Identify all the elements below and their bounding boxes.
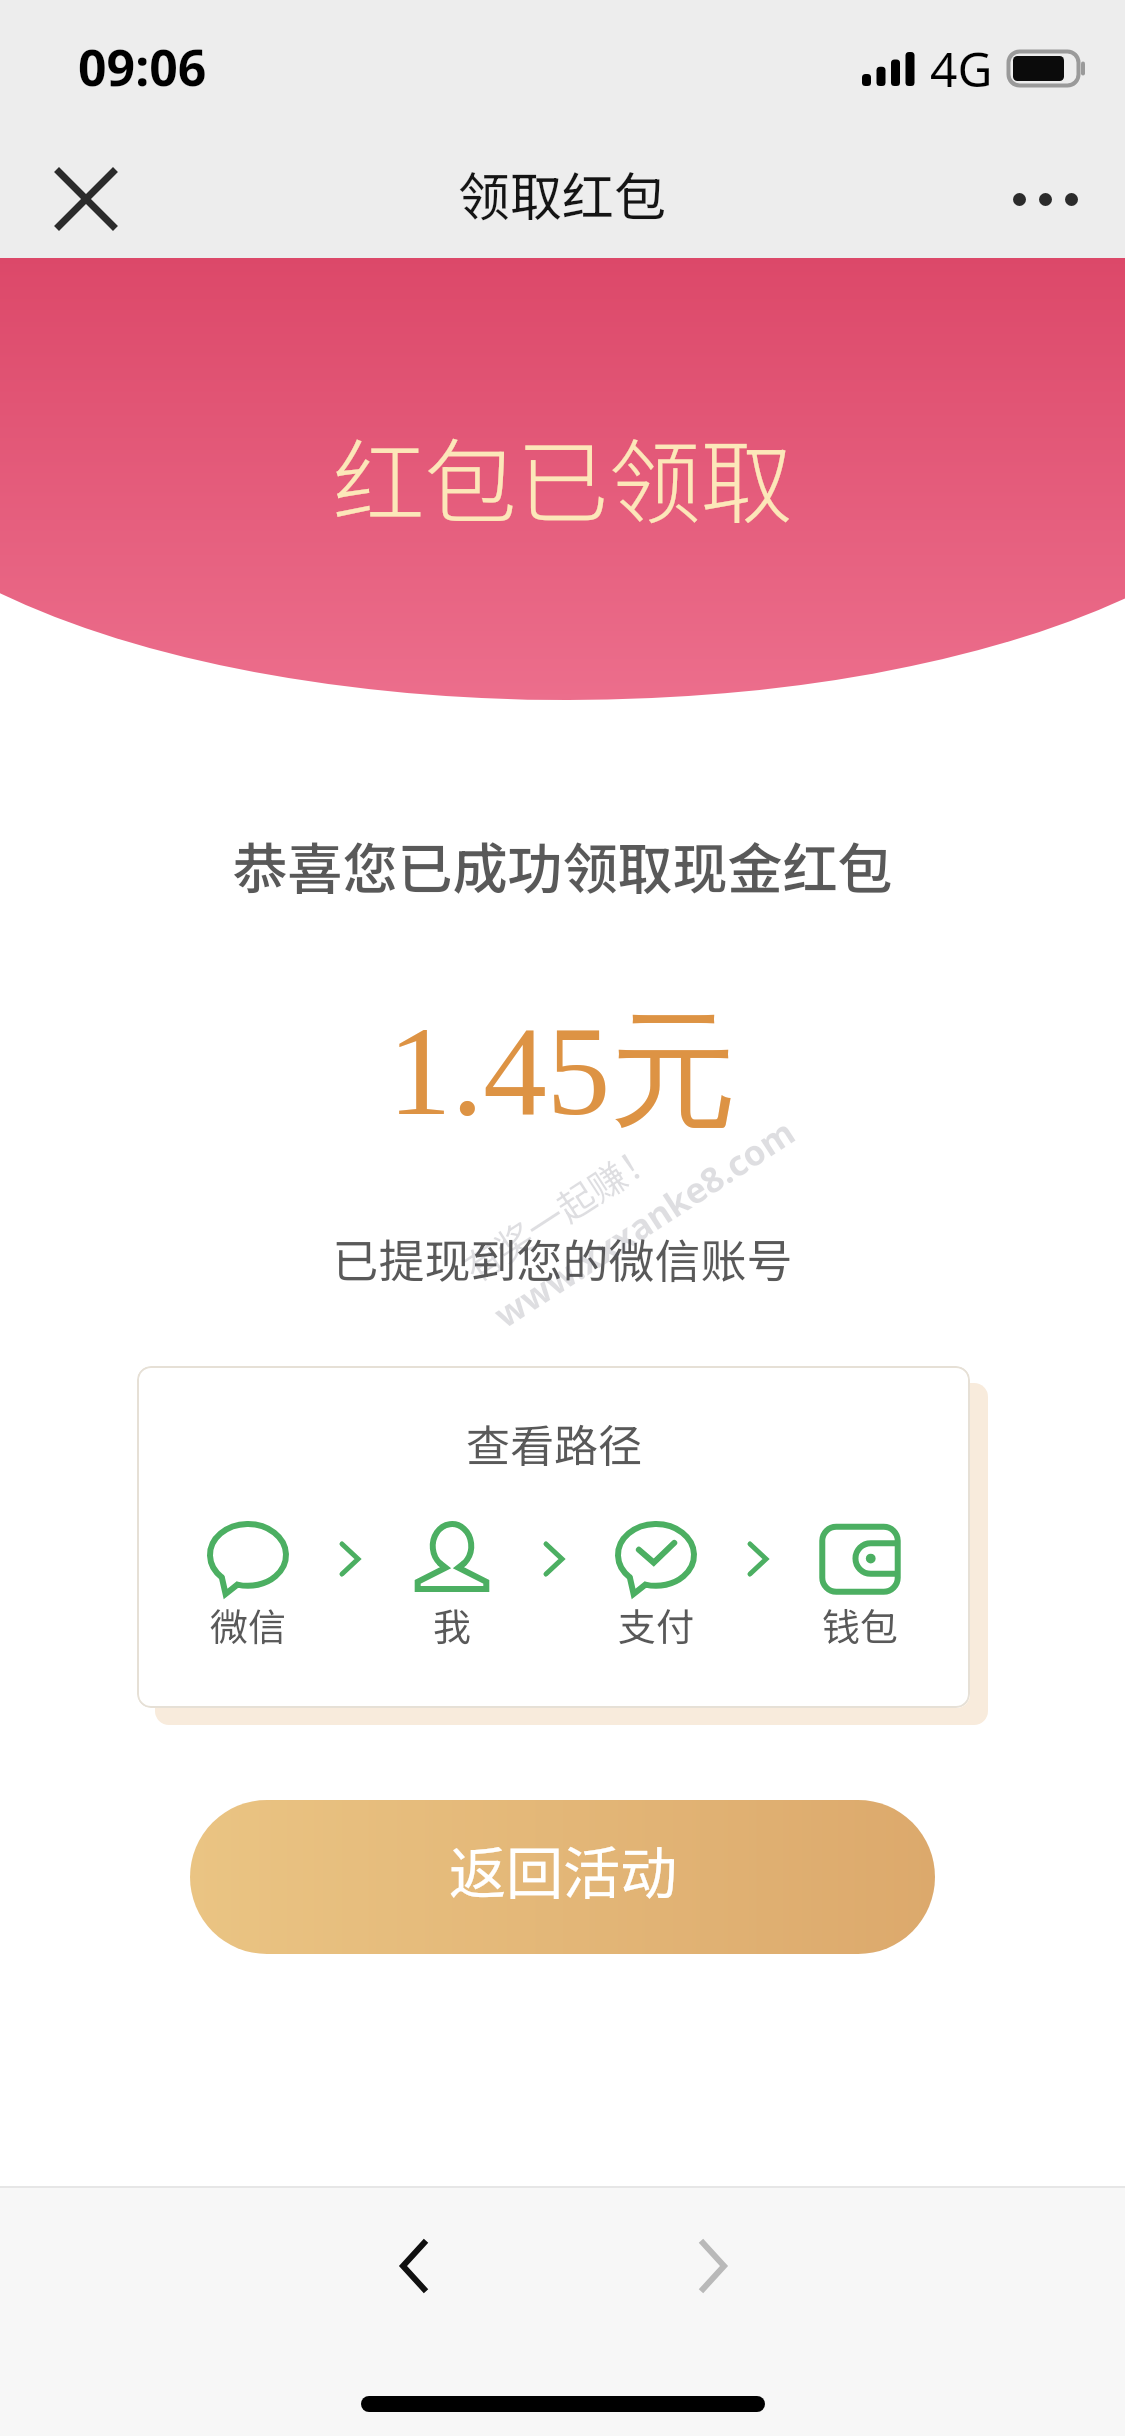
staticText: 支付 bbox=[618, 1597, 695, 1652]
staticText: 查看路径 bbox=[466, 1411, 642, 1475]
staticText: 微信 bbox=[210, 1597, 287, 1652]
button[interactable]: 微信 bbox=[187, 1521, 309, 1652]
staticText: 4G bbox=[930, 36, 993, 101]
button[interactable]: 返回活动 bbox=[190, 1800, 935, 1954]
staticText: 1.45元 bbox=[0, 992, 1125, 1152]
staticText: 已提现到您的微信账号 bbox=[0, 1225, 1125, 1292]
staticText: 领取红包 bbox=[458, 156, 667, 231]
button[interactable]: Forward bbox=[659, 2212, 767, 2320]
staticText: 返回活动 bbox=[449, 1828, 677, 1911]
button[interactable]: 我 bbox=[391, 1521, 513, 1652]
button[interactable]: Back bbox=[359, 2212, 467, 2320]
button[interactable]: 钱包 bbox=[799, 1521, 921, 1652]
staticText: 红包已领取 bbox=[0, 409, 1125, 542]
staticText: 09:06 bbox=[78, 33, 207, 101]
staticText: www.xxxanke8.com bbox=[485, 1108, 804, 1339]
staticText: 恭喜您已成功领取现金红包 bbox=[0, 825, 1125, 905]
staticText: 钱包 bbox=[822, 1597, 899, 1652]
button[interactable]: More options bbox=[997, 151, 1093, 247]
staticText: 我 bbox=[433, 1597, 472, 1652]
button[interactable]: 支付 bbox=[595, 1521, 717, 1652]
staticText: 有奖一起赚！ bbox=[452, 1127, 668, 1293]
button[interactable]: Close bbox=[38, 151, 134, 247]
